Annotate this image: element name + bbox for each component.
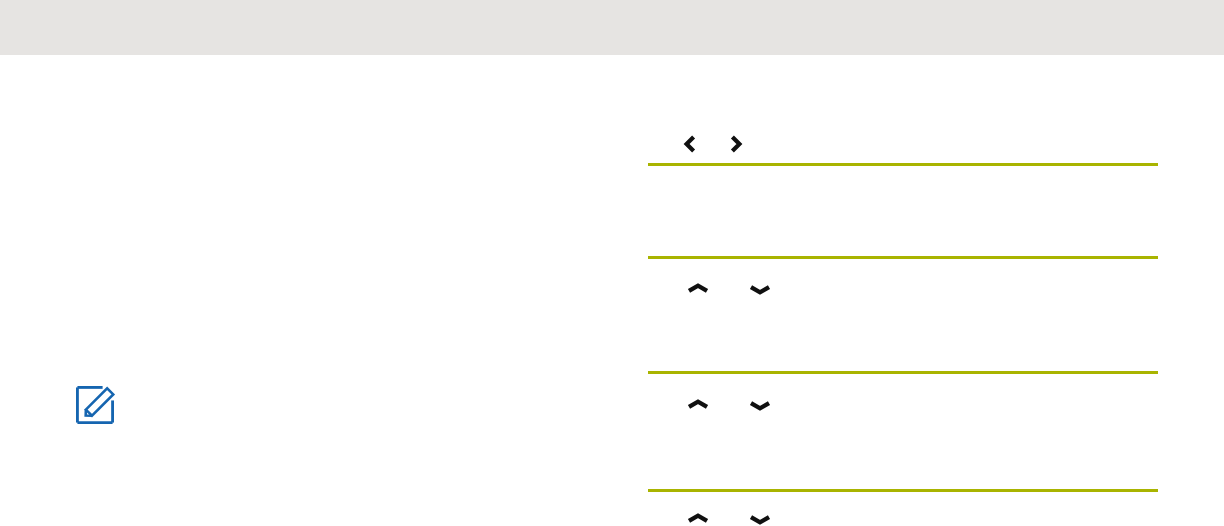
- button[interactable]: Move down: [744, 503, 776, 526]
- button[interactable]: Edit: [76, 386, 114, 424]
- button[interactable]: Move up: [682, 389, 714, 421]
- button[interactable]: Next: [720, 129, 750, 159]
- button[interactable]: Move down: [744, 273, 776, 305]
- button[interactable]: Move up: [682, 503, 714, 526]
- button[interactable]: Move up: [682, 273, 714, 305]
- button[interactable]: Move down: [744, 389, 776, 421]
- button[interactable]: Previous: [676, 129, 706, 159]
